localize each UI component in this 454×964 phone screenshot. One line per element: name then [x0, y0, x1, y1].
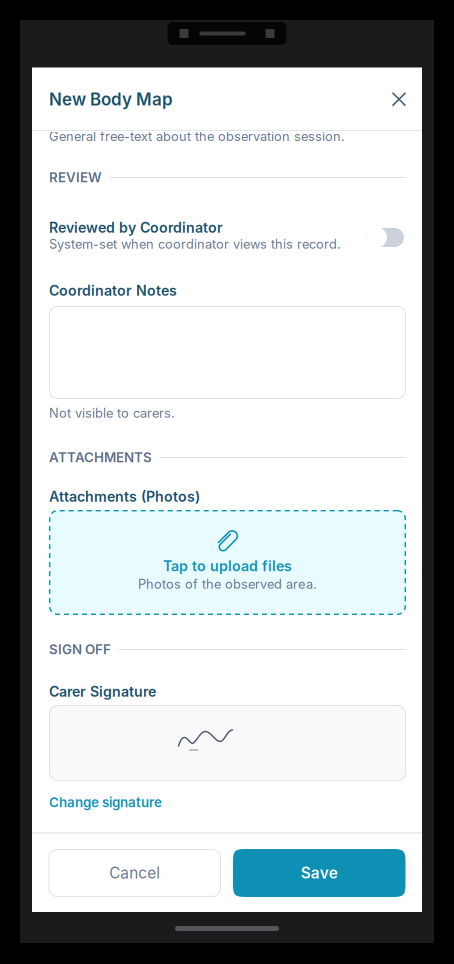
staticText: Reviewed by Coordinator: [49, 219, 223, 236]
staticText: Photos of the observed area.: [138, 576, 317, 592]
button[interactable]: Cancel: [48, 849, 221, 897]
staticText: Tap to upload files: [163, 557, 292, 574]
staticText: Change signature: [49, 794, 162, 810]
staticText: Not visible to carers.: [49, 405, 175, 421]
staticText: New Body Map: [49, 89, 173, 109]
staticText: Cancel: [109, 864, 160, 882]
staticText: ATTACHMENTS: [49, 449, 152, 465]
staticText: System-set when coordinator views this r…: [49, 236, 341, 252]
staticText: General free-text about the observation …: [49, 128, 345, 144]
staticText: Attachments (Photos): [49, 488, 200, 505]
button[interactable]: Change signature: [49, 796, 162, 809]
staticText: REVIEW: [49, 169, 102, 185]
staticText: Coordinator Notes: [49, 282, 177, 299]
button[interactable]: Close: [384, 84, 414, 114]
button[interactable]: Save: [233, 849, 405, 897]
button[interactable]: Reviewed by Coordinator: [366, 227, 406, 248]
staticText: SIGN OFF: [49, 641, 111, 657]
staticText: Carer Signature: [49, 683, 156, 700]
staticText: Save: [301, 864, 338, 882]
button[interactable]: Tap to upload files: [49, 510, 406, 615]
